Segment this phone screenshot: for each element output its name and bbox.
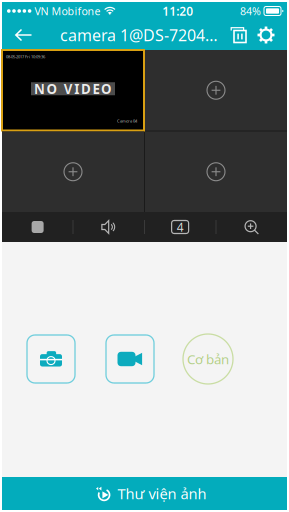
staticText: 4 (177, 219, 184, 235)
button[interactable]: Stop (2, 212, 73, 242)
staticText: VN Mobifone (34, 4, 100, 18)
staticText: NO VIDEO (34, 80, 112, 98)
button[interactable]: Add camera (145, 131, 287, 212)
staticText: Cơ bản (187, 350, 229, 368)
button[interactable]: Add camera (2, 131, 144, 212)
button[interactable]: Digital zoom (216, 212, 287, 242)
button[interactable]: Capture photo (27, 335, 75, 383)
staticText: Camera 04 (117, 118, 137, 123)
button[interactable]: Pause all (225, 20, 252, 50)
button[interactable]: Audio (73, 212, 144, 242)
button[interactable]: Back (6, 20, 41, 50)
button[interactable]: Settings (252, 20, 283, 50)
staticText: camera 1@DS-7204HQH... (60, 24, 229, 46)
button[interactable]: Window layout (144, 212, 216, 242)
staticText: 84% (240, 4, 261, 18)
button[interactable]: Add camera (145, 50, 287, 130)
button[interactable]: Cơ bản (183, 334, 233, 384)
button[interactable]: Thư viện ảnh (2, 477, 287, 510)
button[interactable]: Record video (106, 335, 154, 383)
staticText: 11:20 (162, 3, 193, 19)
staticText: Thư viện ảnh (117, 484, 206, 503)
staticText: 08-05-2017 Fri 10:09:36 (6, 54, 45, 59)
